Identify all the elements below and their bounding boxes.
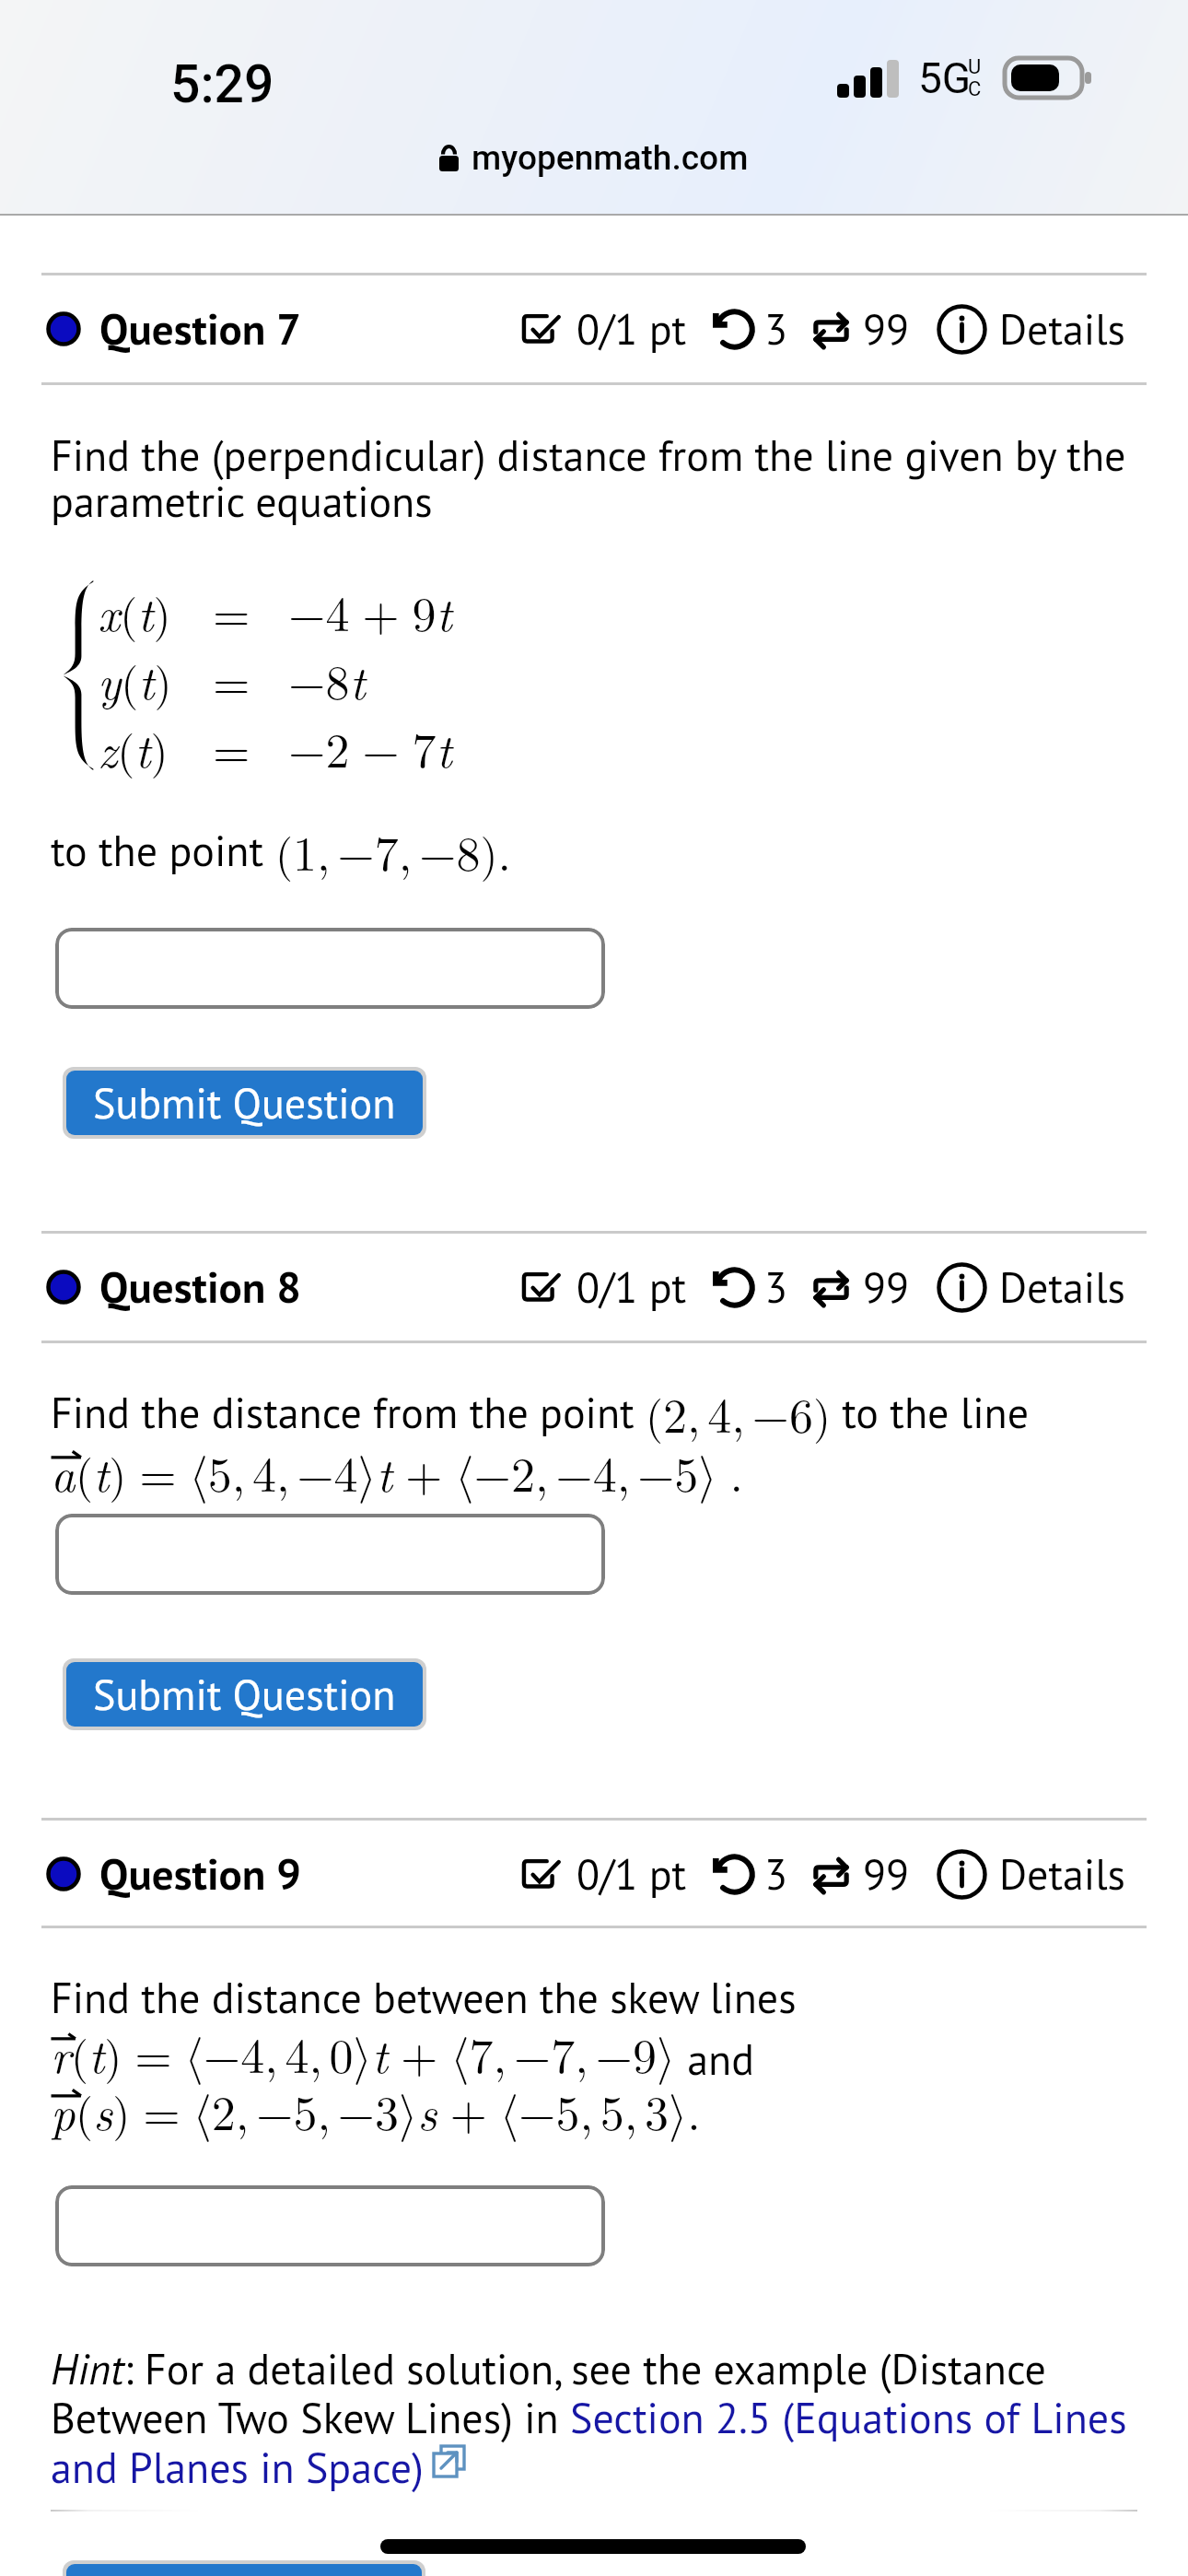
- staticText: Find the distance between the skew lines: [51, 1970, 797, 2025]
- button[interactable]: Answer field: [55, 2185, 605, 2266]
- staticText: myopenmath.com: [472, 138, 749, 178]
- staticText: and: [676, 2032, 755, 2087]
- staticText: 3: [764, 301, 788, 357]
- staticText: 5:29: [170, 53, 274, 115]
- button[interactable]: Submit Question: [66, 1071, 423, 1135]
- staticText: Details: [999, 1846, 1125, 1902]
- staticText: 3: [764, 1259, 788, 1315]
- staticText: z(t): [98, 713, 169, 781]
- staticText: Question 8: [99, 1259, 301, 1315]
- button[interactable]: Details: [938, 1259, 1125, 1315]
- staticText: Question 7: [99, 300, 301, 357]
- staticText: U C: [968, 55, 982, 100]
- staticText: 5G: [918, 53, 972, 103]
- staticText: (1, −7, −8).: [275, 816, 511, 884]
- staticText: 99: [863, 1259, 910, 1315]
- button[interactable]: Question versions: [810, 1267, 852, 1308]
- staticText: (2, 4, −6): [646, 1378, 831, 1446]
- staticText: =: [213, 713, 250, 781]
- staticText: −4 + 9t: [288, 577, 452, 645]
- staticText: Submit Question: [93, 1667, 396, 1722]
- staticText: 0/1 pt: [577, 301, 687, 357]
- staticText: 99: [863, 301, 910, 357]
- staticText: p: [51, 2076, 76, 2144]
- staticText: 3: [764, 1846, 788, 1902]
- staticText: Question 9: [99, 1845, 301, 1902]
- button[interactable]: Details: [938, 301, 1125, 357]
- button[interactable]: Score: [521, 310, 560, 348]
- button[interactable]: Submit Question: [63, 2560, 425, 2576]
- staticText: to the line: [831, 1385, 1030, 1440]
- staticText: (s) = 〈2, −5, −3〉s + 〈−5, 5, 3〉.: [76, 2076, 701, 2144]
- staticText: (t) = 〈−4, 4, 0〉t + 〈7, −7, −9〉: [71, 2019, 676, 2087]
- staticText: =: [213, 577, 250, 645]
- staticText: Details: [999, 1259, 1125, 1315]
- staticText: −8t: [288, 645, 366, 713]
- staticText: Find the (perpendicular) distance from t…: [51, 427, 1126, 483]
- staticText: parametric equations: [51, 474, 433, 529]
- button[interactable]: Open in new window: [431, 2443, 468, 2480]
- button[interactable]: Attempts remaining: [713, 1854, 754, 1895]
- button[interactable]: Answer field: [55, 928, 605, 1009]
- button[interactable]: Question versions: [810, 1854, 852, 1895]
- staticText: x(t): [98, 577, 171, 645]
- button[interactable]: Answer field: [55, 1514, 605, 1595]
- button[interactable]: Submit Question: [66, 1662, 423, 1727]
- staticText: r: [51, 2019, 71, 2087]
- staticText: a: [51, 1437, 76, 1505]
- staticText: 0/1 pt: [577, 1259, 687, 1315]
- button[interactable]: Score: [521, 1268, 560, 1306]
- staticText: 99: [863, 1846, 910, 1902]
- staticText: Find the distance from the point: [51, 1385, 646, 1440]
- staticText: Hint: For a detailed solution, see the e…: [51, 2341, 1139, 2495]
- button[interactable]: Details: [938, 1846, 1125, 1902]
- staticText: =: [213, 645, 250, 713]
- staticText: y(t): [98, 645, 172, 713]
- staticText: to the point: [51, 823, 275, 878]
- button[interactable]: Attempts remaining: [713, 309, 754, 350]
- staticText: Details: [999, 301, 1125, 357]
- staticText: Submit Question: [93, 1075, 396, 1130]
- button[interactable]: Score: [521, 1855, 560, 1893]
- staticText: 0/1 pt: [577, 1846, 687, 1902]
- staticText: −2 − 7t: [288, 713, 452, 781]
- button[interactable]: Attempts remaining: [713, 1267, 754, 1308]
- button[interactable]: Question versions: [810, 309, 852, 350]
- staticText: (t) = 〈5, 4, −4〉t + 〈−2, −4, −5〉 .: [76, 1437, 743, 1505]
